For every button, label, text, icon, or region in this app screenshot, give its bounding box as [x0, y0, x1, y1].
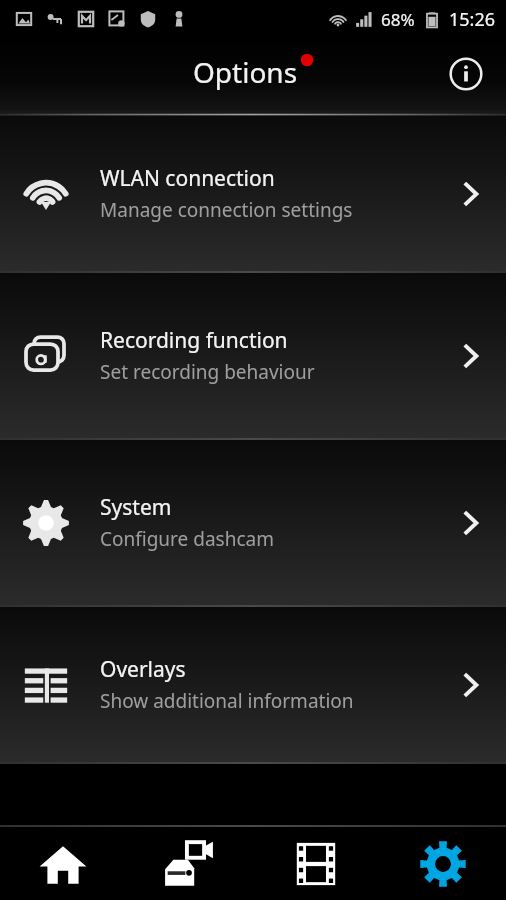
staticText: 15:26 — [449, 7, 496, 32]
staticText: System — [100, 493, 172, 522]
button[interactable]: Home — [0, 827, 126, 900]
staticText: WLAN connection — [100, 164, 275, 193]
staticText: Configure dashcam — [100, 526, 274, 552]
staticText: Recording function — [100, 326, 288, 355]
button[interactable]: System — [0, 440, 506, 605]
button[interactable]: Information — [444, 52, 488, 96]
button[interactable]: Dashcam — [126, 827, 252, 900]
button[interactable]: Videos — [252, 827, 379, 900]
button[interactable]: Recording function — [0, 273, 506, 438]
button[interactable]: Settings — [379, 827, 506, 900]
staticText: Options — [193, 53, 298, 91]
staticText: 68% — [381, 8, 415, 31]
staticText: Overlays — [100, 655, 186, 684]
staticText: Show additional information — [100, 688, 354, 714]
staticText: Set recording behaviour — [100, 359, 315, 385]
staticText: Manage connection settings — [100, 197, 353, 223]
button[interactable]: WLAN connection — [0, 116, 506, 271]
button[interactable]: Overlays — [0, 607, 506, 762]
